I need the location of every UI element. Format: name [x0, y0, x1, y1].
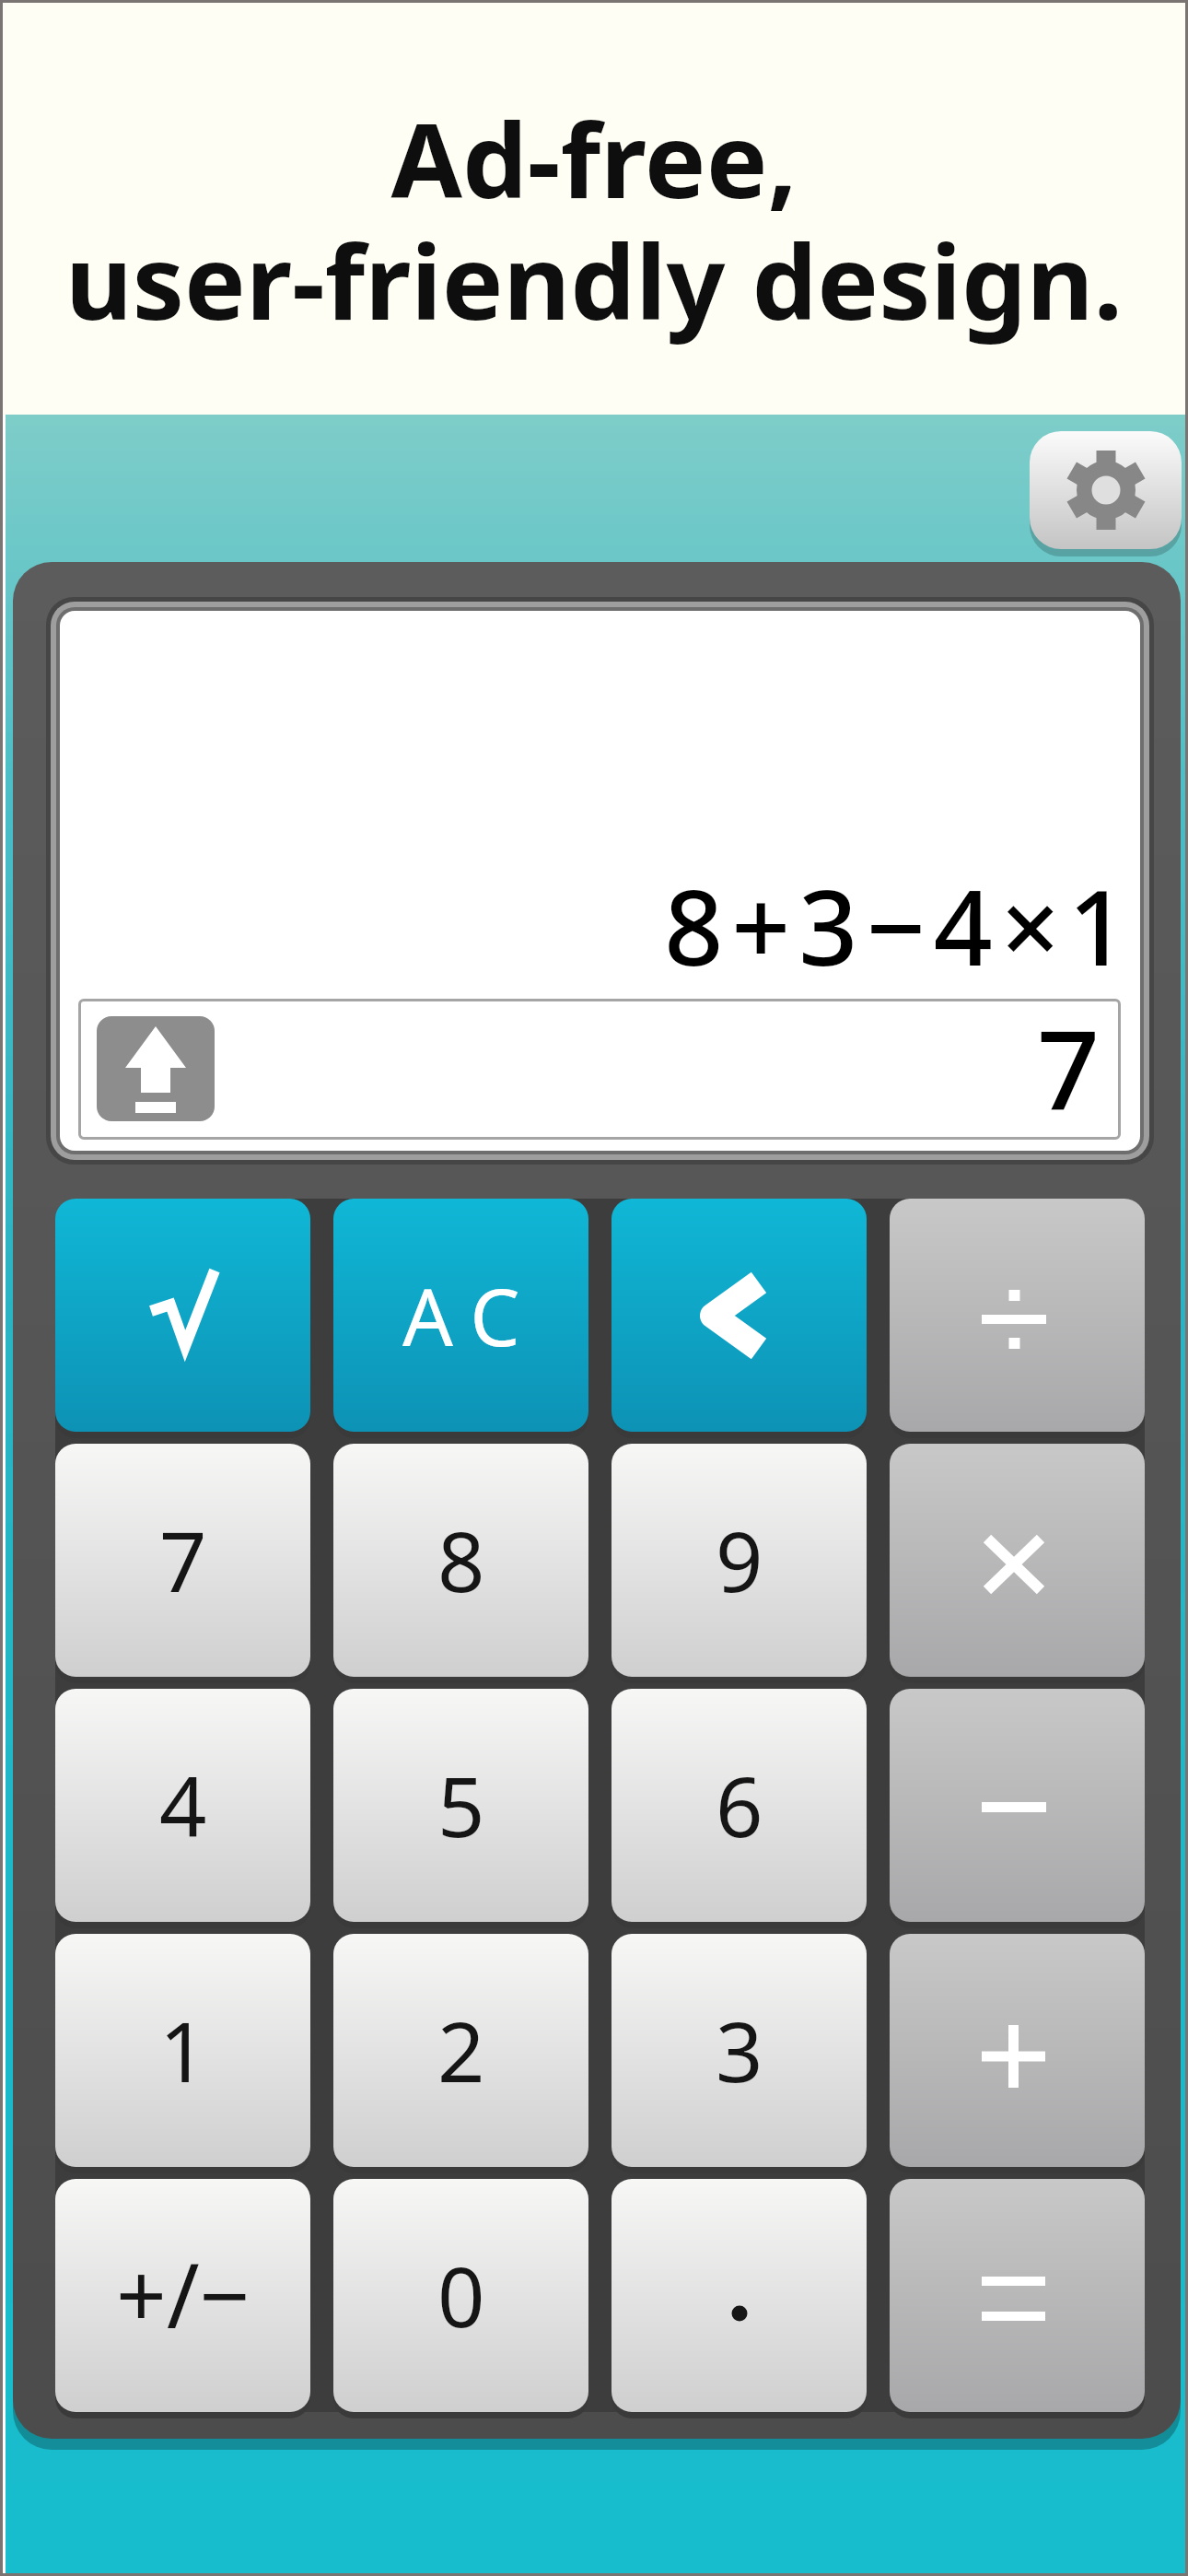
staticText: 8+3−4×1 [126, 855, 1136, 993]
button[interactable] [890, 1689, 1145, 1922]
button[interactable]: 9 [611, 1444, 867, 1677]
staticText: 7 [1037, 992, 1101, 1133]
staticText: 4 [159, 1749, 207, 1862]
button[interactable]: 2 [333, 1934, 588, 2167]
button[interactable]: 0 [333, 2179, 588, 2412]
staticText: 6 [716, 1749, 763, 1862]
button[interactable] [890, 1934, 1145, 2167]
button[interactable] [890, 2179, 1145, 2412]
button[interactable]: 4 [55, 1689, 310, 1922]
staticText: 9 [716, 1504, 763, 1617]
staticText: 5 [437, 1749, 485, 1862]
button[interactable]: +/− [55, 2179, 310, 2412]
staticText: Ad-free, user-friendly design. [0, 88, 1188, 349]
staticText: AC [402, 1261, 539, 1369]
button[interactable] [611, 1199, 867, 1432]
button[interactable]: AC [333, 1199, 588, 1432]
button[interactable] [611, 2179, 867, 2412]
staticText: 0 [437, 2239, 485, 2352]
button[interactable] [55, 1199, 310, 1432]
staticText: 1 [159, 1994, 207, 2107]
button[interactable] [890, 1444, 1145, 1677]
button[interactable] [1030, 431, 1182, 549]
button[interactable]: 5 [333, 1689, 588, 1922]
button[interactable]: 6 [611, 1689, 867, 1922]
staticText: 2 [437, 1994, 485, 2107]
button[interactable]: 7 [55, 1444, 310, 1677]
staticText: +/− [116, 2233, 250, 2354]
button[interactable] [97, 1016, 215, 1121]
button[interactable]: 8 [333, 1444, 588, 1677]
staticText: 7 [159, 1504, 207, 1617]
button[interactable]: 3 [611, 1934, 867, 2167]
button[interactable]: 1 [55, 1934, 310, 2167]
button[interactable] [890, 1199, 1145, 1432]
staticText: 8 [437, 1504, 485, 1617]
staticText: 3 [716, 1994, 763, 2107]
